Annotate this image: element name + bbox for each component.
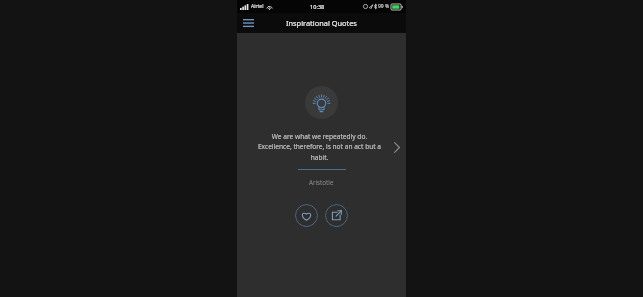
- staticText: 10:38: [310, 3, 325, 11]
- button[interactable]: Open navigation menu: [239, 14, 257, 32]
- button[interactable]: Share: [325, 204, 348, 227]
- staticText: Aristotle: [309, 178, 334, 186]
- staticText: Inspirational Quotes: [286, 18, 357, 28]
- button[interactable]: We are what we repeatedly do. Excellence…: [237, 132, 406, 162]
- staticText: 99 %: [378, 3, 390, 10]
- staticText: Airtel: [251, 3, 264, 10]
- button[interactable]: Favorite: [295, 204, 318, 227]
- staticText: We are what we repeatedly do. Excellence…: [255, 132, 384, 162]
